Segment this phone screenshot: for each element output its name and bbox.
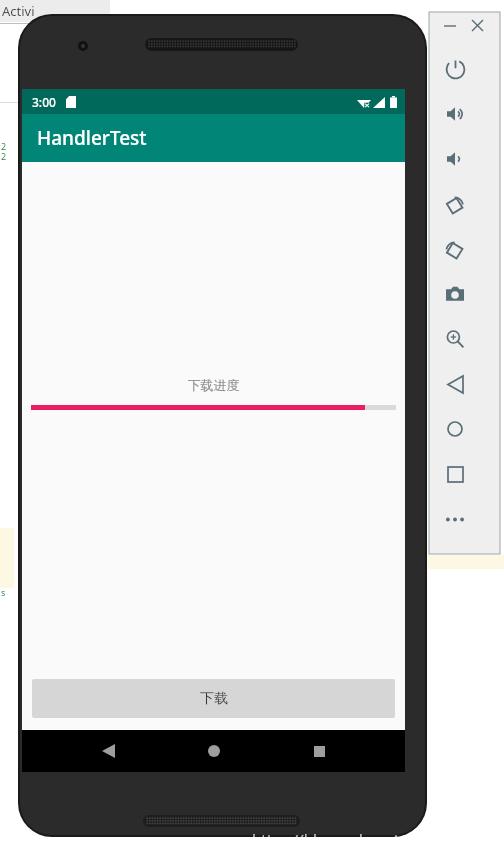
staticText: 下载进度 <box>22 377 405 393</box>
button[interactable]: Home <box>194 731 234 771</box>
button[interactable]: Recent apps <box>299 731 339 771</box>
staticText: Activi <box>2 2 35 20</box>
button[interactable]: Rotate left <box>438 187 472 221</box>
button[interactable]: More <box>438 502 472 536</box>
staticText: https://blog.csdn.net/qq_41525021 <box>252 829 499 849</box>
button[interactable]: Back <box>88 731 128 771</box>
staticText: 3:00 <box>32 94 56 110</box>
button[interactable]: Recent apps <box>438 457 472 491</box>
button[interactable]: Take screenshot <box>438 277 472 311</box>
button[interactable]: Zoom <box>438 322 472 356</box>
staticText: HandlerTest <box>37 125 147 151</box>
button[interactable]: Power <box>438 52 472 86</box>
staticText: 2 <box>1 150 7 162</box>
staticText: s <box>1 586 6 598</box>
button[interactable]: Back <box>438 367 472 401</box>
button[interactable]: 下载 <box>32 679 395 718</box>
button[interactable]: Home <box>438 412 472 446</box>
button[interactable]: Volume up <box>438 97 472 131</box>
staticText: 下载 <box>200 690 228 708</box>
button[interactable]: Rotate right <box>438 232 472 266</box>
button[interactable]: Volume down <box>438 142 472 176</box>
staticText: 2 <box>1 140 7 152</box>
